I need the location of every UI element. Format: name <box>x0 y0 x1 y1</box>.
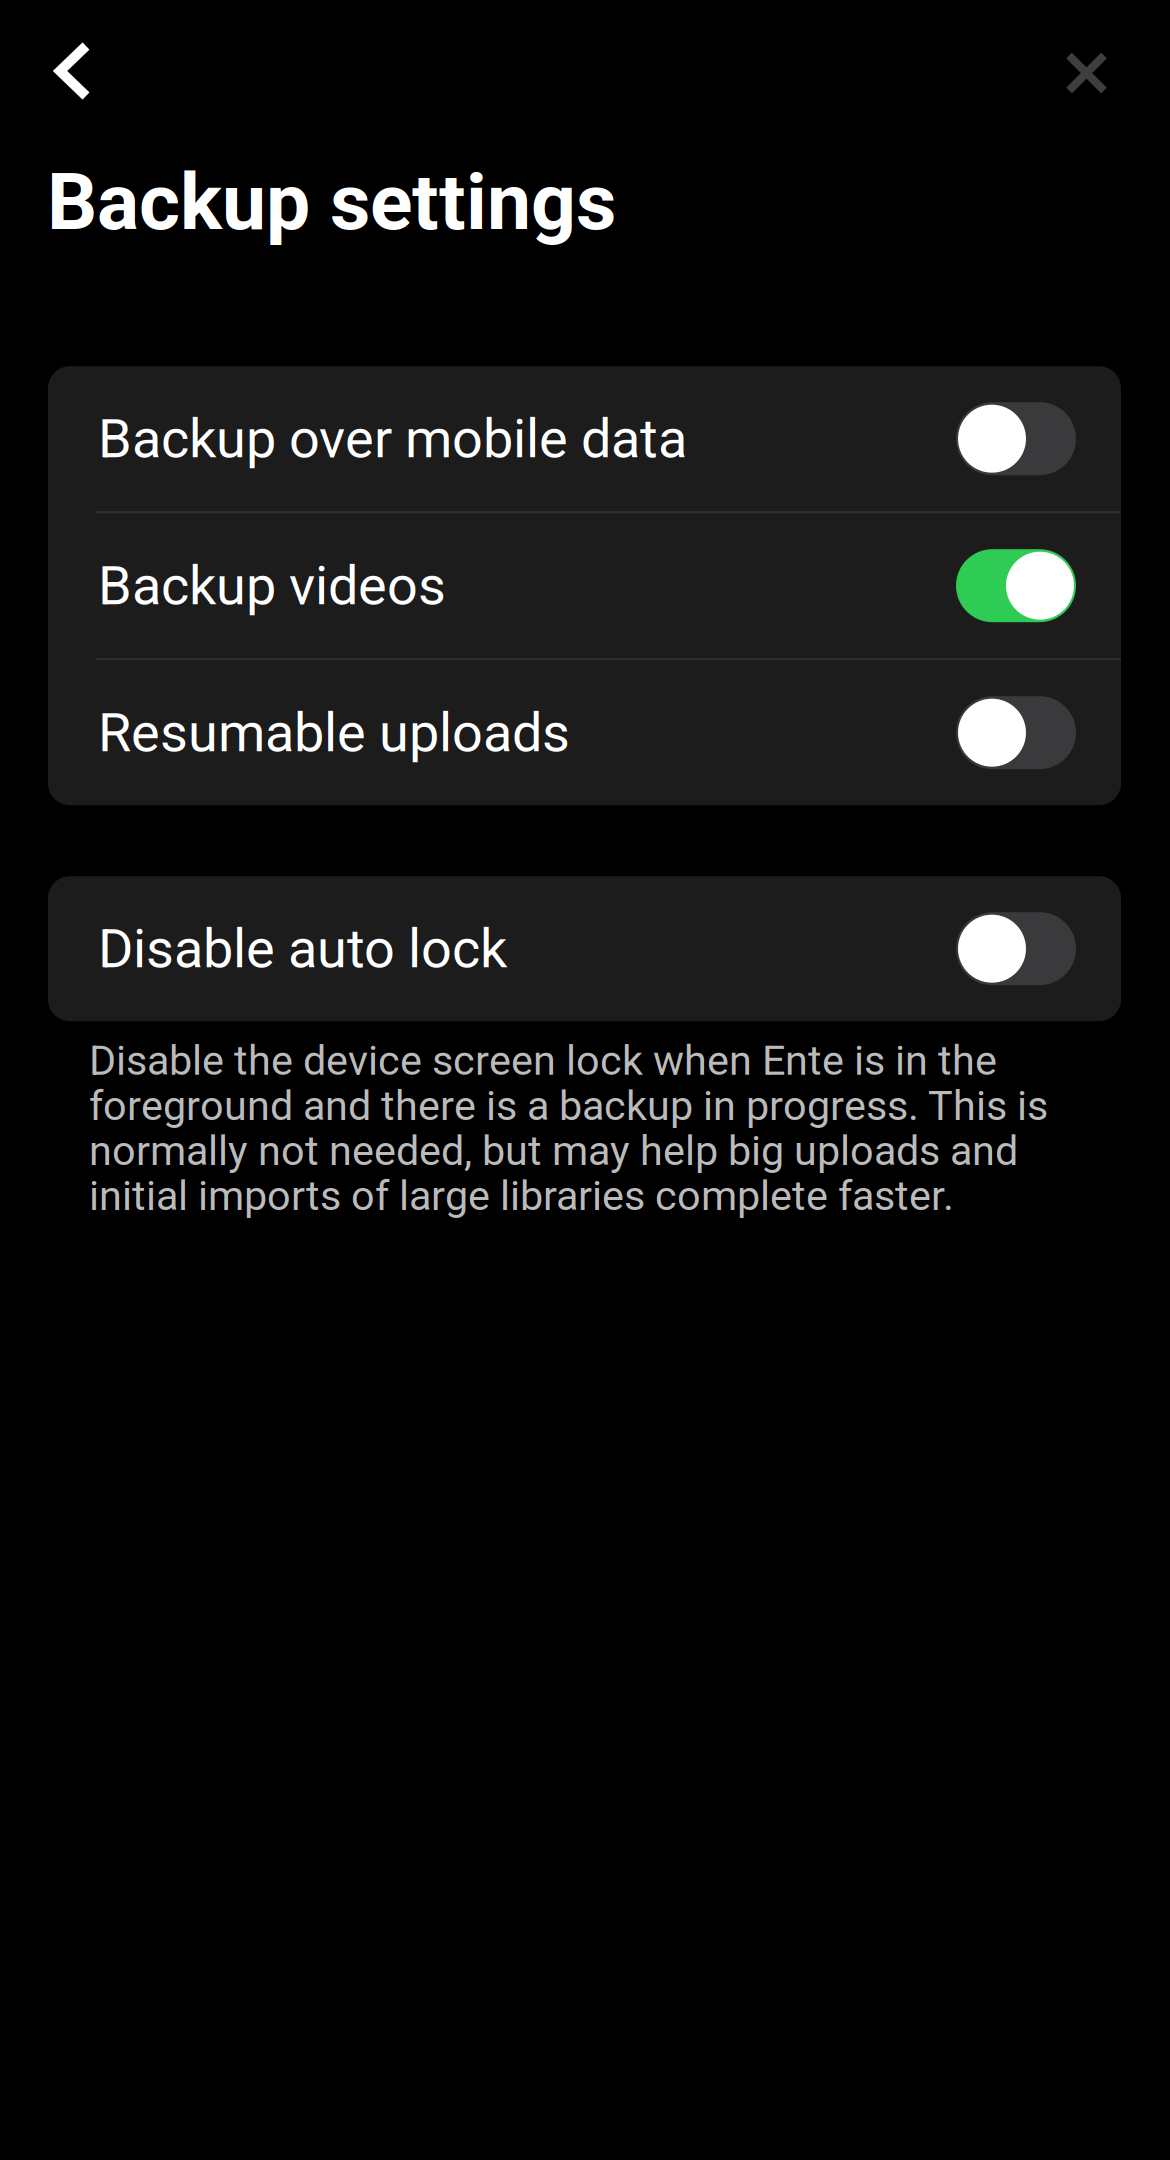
staticText: Disable the device screen lock when Ente… <box>89 1038 1048 1218</box>
button[interactable]: Resumable uploads <box>48 660 1121 805</box>
button[interactable]: Disable auto lock <box>48 876 1121 1021</box>
button[interactable]: Close <box>1037 6 1170 122</box>
staticText: Disable auto lock <box>98 917 507 980</box>
staticText: Backup over mobile data <box>98 407 687 470</box>
staticText: Backup videos <box>98 554 446 617</box>
button[interactable]: Backup over mobile data <box>48 366 1121 511</box>
button[interactable]: Back <box>0 0 119 129</box>
staticText: Backup settings <box>47 156 616 248</box>
staticText: Resumable uploads <box>98 701 570 764</box>
button[interactable]: Backup videos <box>48 513 1121 658</box>
